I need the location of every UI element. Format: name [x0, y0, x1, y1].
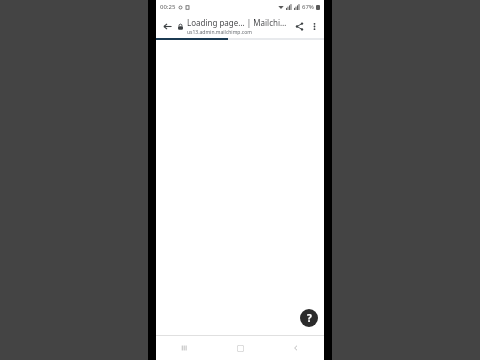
- button[interactable]: Back: [159, 18, 175, 34]
- button[interactable]: Share: [291, 18, 307, 34]
- staticText: 67%: [302, 3, 314, 11]
- staticText: 00:25: [160, 3, 176, 11]
- button[interactable]: Help: [300, 309, 318, 327]
- staticText: ?: [307, 311, 312, 325]
- staticText: us13.admin.mailchimp.com: [187, 29, 252, 36]
- button[interactable]: Home: [212, 336, 268, 360]
- button[interactable]: More options: [307, 19, 321, 33]
- button[interactable]: Loading page... | Mailchimp: [187, 17, 289, 36]
- staticText: Loading page... | Mailchimp: [187, 17, 289, 28]
- button[interactable]: Recents: [156, 336, 212, 360]
